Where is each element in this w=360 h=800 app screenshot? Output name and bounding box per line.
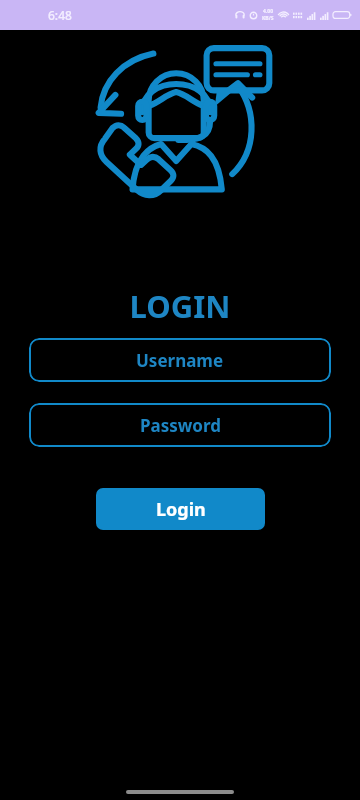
staticText: 4.00 [263, 8, 273, 15]
button[interactable]: Login [96, 488, 265, 530]
staticText: Username [136, 349, 224, 372]
staticText: Password [140, 414, 221, 437]
staticText: LOGIN [0, 285, 360, 327]
staticText: 6:48 [48, 7, 72, 23]
staticText: KB/S [262, 15, 274, 22]
staticText: Login [156, 497, 206, 522]
other: Customer support [85, 40, 275, 220]
button[interactable]: Password [29, 403, 331, 447]
button[interactable]: Username [29, 338, 331, 382]
